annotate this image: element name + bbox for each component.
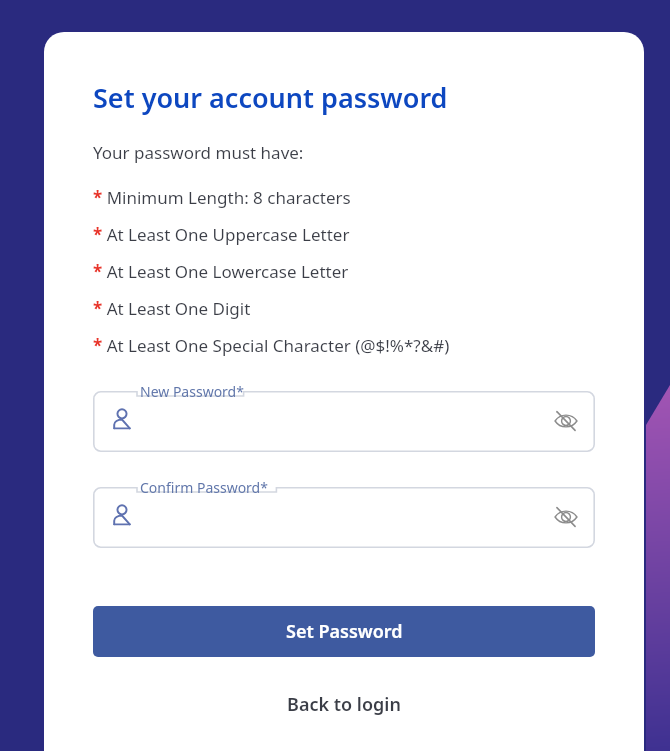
staticText: Confirm Password* [140, 478, 268, 497]
staticText: * Minimum Length: 8 characters [93, 186, 351, 209]
button[interactable]: Show password [551, 406, 581, 436]
button[interactable]: Back to login [93, 684, 595, 724]
button[interactable]: Show password [551, 502, 581, 532]
staticText: * At Least One Uppercase Letter [93, 223, 350, 246]
staticText: Set your account password [93, 79, 448, 116]
staticText: Set Password [286, 619, 403, 644]
button[interactable]: New Password* [93, 380, 595, 452]
staticText: * At Least One Digit [93, 297, 251, 320]
staticText: Back to login [287, 692, 401, 717]
staticText: New Password* [140, 382, 244, 401]
staticText: * At Least One Lowercase Letter [93, 260, 349, 283]
staticText: Your password must have: [93, 141, 304, 164]
staticText: * At Least One Special Character (@$!%*?… [93, 334, 450, 357]
button[interactable]: Set Password [93, 606, 595, 657]
button[interactable]: Confirm Password* [93, 476, 595, 548]
